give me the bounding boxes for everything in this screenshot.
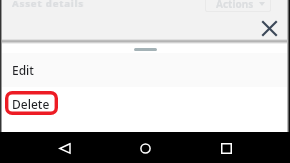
button[interactable]: Close xyxy=(258,17,281,40)
button[interactable]: Back xyxy=(52,136,76,160)
staticText: Actions xyxy=(216,0,254,11)
staticText: Asset details xyxy=(13,0,86,10)
button[interactable]: Home xyxy=(133,136,157,160)
staticText: Delete xyxy=(12,96,50,112)
staticText: Asset details xyxy=(12,0,85,10)
button[interactable]: Edit xyxy=(0,53,290,87)
staticText: Edit xyxy=(12,62,34,78)
staticText: Asset details xyxy=(12,0,85,10)
button[interactable]: Actions xyxy=(205,0,271,12)
button[interactable]: Recent apps xyxy=(214,136,238,160)
button[interactable]: Delete xyxy=(0,87,290,121)
